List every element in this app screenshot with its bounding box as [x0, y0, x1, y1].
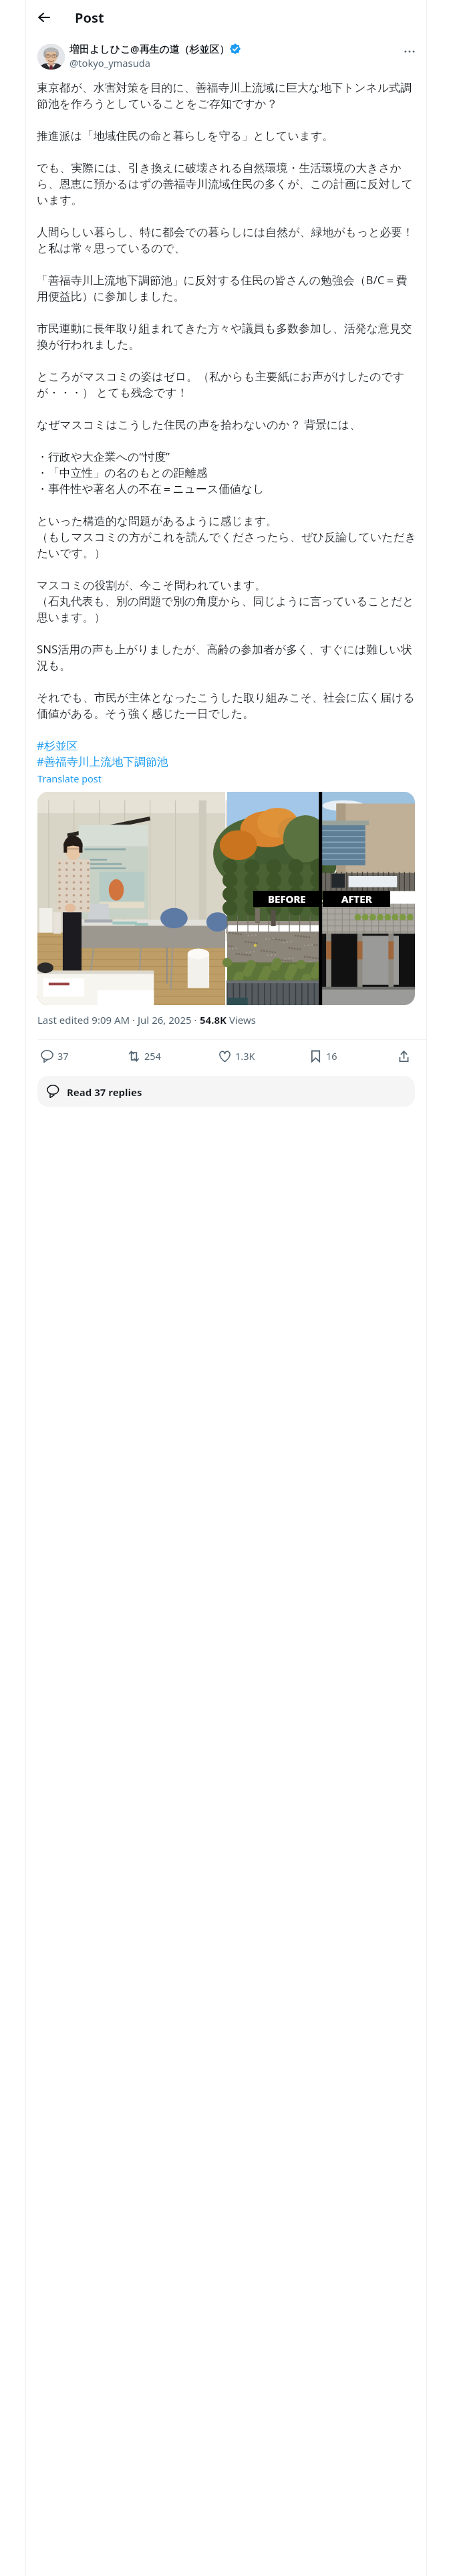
button[interactable]: Like	[216, 1043, 255, 1069]
button[interactable]: Repost	[126, 1043, 161, 1069]
button[interactable]: 増田よしひこ@再生の道（杉並区）	[26, 35, 426, 70]
staticText: Views	[227, 1013, 256, 1027]
staticText: Post	[75, 9, 104, 27]
staticText: 1.3K	[235, 1049, 255, 1063]
staticText: AFTER	[341, 892, 372, 905]
staticText: BEFORE	[268, 892, 306, 905]
staticText: 54.8K	[200, 1013, 227, 1027]
button[interactable]: 東京都が、水害対策を目的に、善福寺川上流域に巨大な地下トンネル式調 節池を作ろう…	[37, 81, 417, 769]
staticText: Read 37 replies	[67, 1085, 142, 1099]
button[interactable]	[37, 792, 225, 1005]
staticText: 254	[144, 1049, 161, 1063]
button[interactable]: Back	[31, 5, 55, 29]
button[interactable]: Reply	[39, 1043, 69, 1069]
staticText: @tokyo_ymasuda	[69, 56, 150, 70]
button[interactable]: More options	[398, 40, 421, 63]
button[interactable]: BEFORE	[227, 792, 415, 1005]
button[interactable]: Translate post	[37, 772, 102, 785]
staticText: Last edited 9:09 AM · Jul 26, 2025 ·	[37, 1013, 200, 1027]
button[interactable]: Share	[391, 1043, 416, 1069]
staticText: 16	[326, 1049, 337, 1063]
staticText: 増田よしひこ@再生の道（杉並区）	[69, 42, 230, 56]
button[interactable]: Bookmark	[307, 1043, 337, 1069]
staticText: 37	[57, 1049, 69, 1063]
button[interactable]: Read 37 replies	[37, 1076, 415, 1107]
